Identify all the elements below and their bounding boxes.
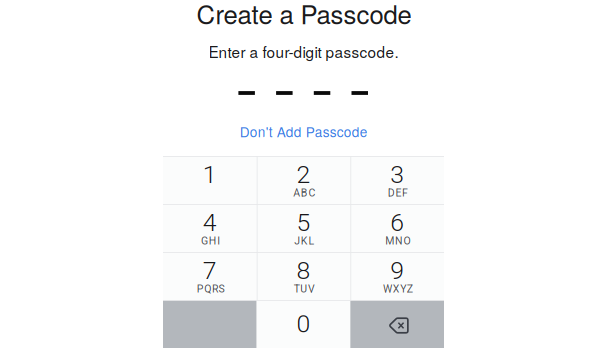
button[interactable]: 7 bbox=[163, 252, 257, 300]
staticText: GHI bbox=[201, 235, 220, 247]
staticText: 5 bbox=[296, 208, 310, 237]
button[interactable]: 6 bbox=[350, 204, 444, 252]
button[interactable]: 4 bbox=[163, 204, 257, 252]
staticText: Enter a four-digit passcode. bbox=[208, 40, 398, 62]
staticText: JKL bbox=[294, 235, 314, 247]
staticText: WXYZ bbox=[383, 283, 413, 295]
staticText: ABC bbox=[293, 187, 315, 199]
staticText: 3 bbox=[390, 160, 404, 189]
staticText: Create a Passcode bbox=[196, 0, 411, 32]
button[interactable]: 9 bbox=[350, 252, 444, 300]
staticText: 2 bbox=[296, 160, 310, 189]
button[interactable]: Don't Add Passcode bbox=[230, 116, 378, 147]
button[interactable]: 1 bbox=[163, 156, 257, 204]
staticText: 1 bbox=[203, 160, 217, 189]
staticText: Don't Add Passcode bbox=[240, 122, 368, 141]
staticText: PQRS bbox=[197, 283, 224, 295]
button[interactable]: 2 bbox=[257, 156, 350, 204]
button[interactable]: 3 bbox=[350, 156, 444, 204]
staticText: TUV bbox=[294, 283, 315, 295]
button[interactable]: 0 bbox=[257, 300, 350, 348]
button[interactable]: Delete bbox=[350, 300, 444, 348]
staticText: 7 bbox=[203, 256, 217, 285]
staticText: 0 bbox=[296, 309, 310, 338]
staticText: 4 bbox=[203, 208, 217, 237]
staticText: 9 bbox=[390, 256, 404, 285]
button[interactable]: 5 bbox=[257, 204, 350, 252]
button[interactable]: Blank bbox=[163, 300, 257, 348]
button[interactable]: 8 bbox=[257, 252, 350, 300]
staticText: 6 bbox=[390, 208, 404, 237]
staticText: 8 bbox=[296, 256, 310, 285]
staticText: DEF bbox=[388, 187, 408, 199]
staticText: MNO bbox=[385, 235, 411, 247]
